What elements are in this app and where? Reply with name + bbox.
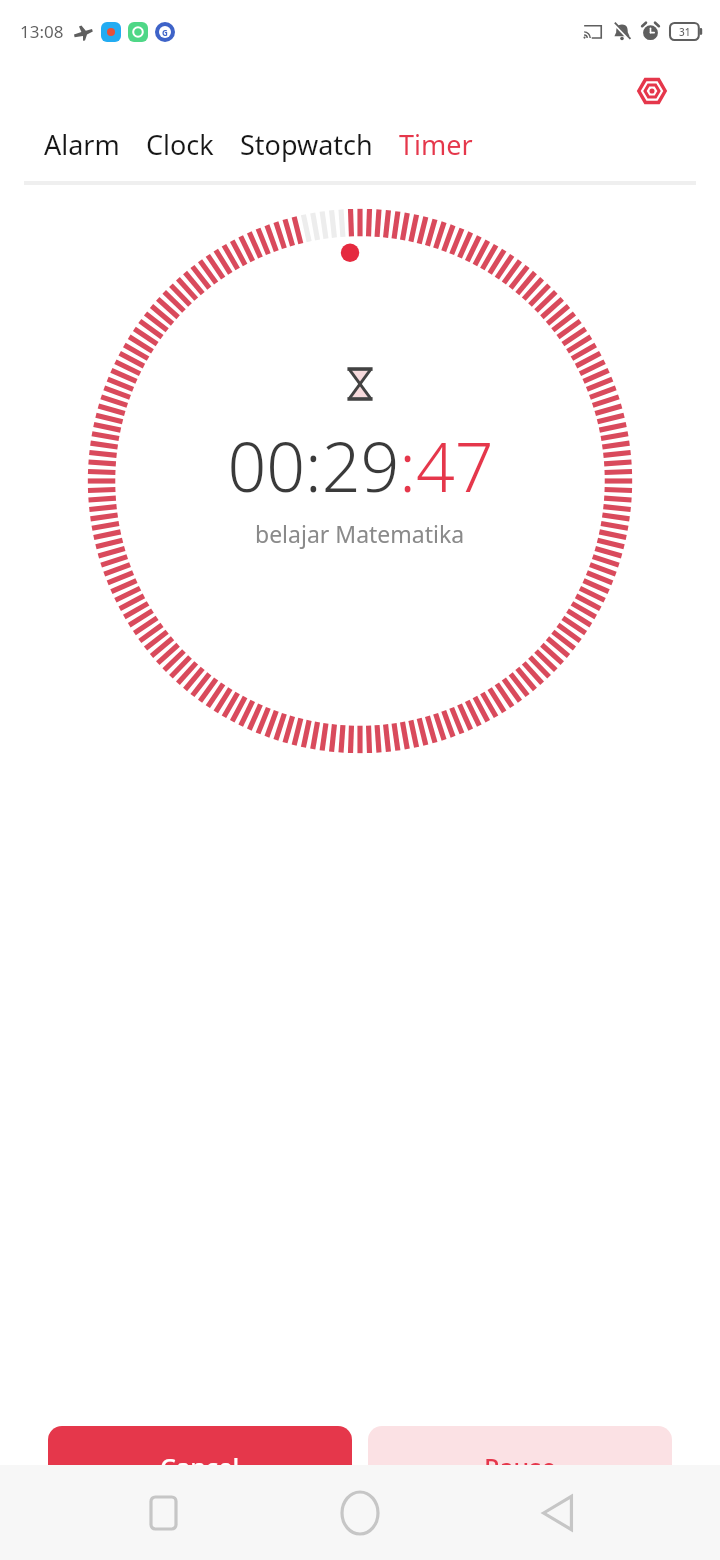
- button[interactable]: Timer dial: [80, 201, 640, 761]
- button[interactable]: Clock: [146, 120, 214, 169]
- button[interactable]: Back: [523, 1478, 593, 1548]
- staticText: belajar Matematika: [255, 518, 465, 549]
- button[interactable]: Pause: [368, 1426, 672, 1508]
- button[interactable]: Timer settings: [630, 69, 674, 113]
- staticText: 00:29:47: [227, 419, 494, 512]
- button[interactable]: Home: [325, 1478, 395, 1548]
- button[interactable]: Recent apps: [128, 1478, 198, 1548]
- staticText: 13:08: [20, 20, 64, 43]
- staticText: Timer: [399, 126, 473, 163]
- button[interactable]: Timer: [399, 120, 473, 169]
- staticText: Cancel: [160, 1450, 240, 1484]
- button[interactable]: Cancel: [48, 1426, 352, 1508]
- staticText: G: [162, 27, 168, 38]
- staticText: Pause: [484, 1450, 556, 1484]
- staticText: Alarm: [44, 126, 120, 163]
- button[interactable]: Stopwatch: [240, 120, 373, 169]
- staticText: Stopwatch: [240, 126, 373, 163]
- button[interactable]: Alarm: [44, 120, 120, 169]
- staticText: Clock: [146, 126, 214, 163]
- staticText: 31: [679, 25, 691, 39]
